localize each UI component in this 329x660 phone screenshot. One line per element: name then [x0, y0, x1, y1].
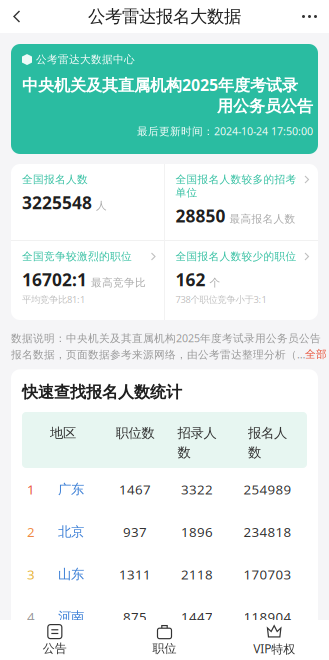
staticText: 1896 [181, 523, 213, 541]
staticText: 广东 [58, 481, 84, 497]
staticText: 738个职位竞争小于3:1 [175, 293, 266, 305]
staticText: 2118 [181, 565, 213, 583]
staticText: 16702:1 [22, 268, 87, 291]
staticText: 数据说明：中央机关及其直属机构2025年度考试录用公务员公告 [11, 331, 321, 345]
staticText: 数 [248, 444, 261, 461]
button[interactable]: 全国报名人数 [11, 164, 164, 240]
staticText: 人 [96, 199, 107, 212]
staticText: 最高竞争比 [91, 276, 146, 289]
staticText: 报名人 [248, 425, 287, 441]
staticText: 公考雷达报名大数据 [88, 6, 241, 27]
button[interactable]: 全国报名人数较少的职位 [164, 241, 318, 320]
staticText: 河南 [58, 608, 84, 625]
staticText: 234818 [243, 523, 291, 541]
staticText: 职位数 [115, 425, 154, 441]
staticText: 875 [123, 608, 147, 626]
button[interactable]: 公告 [0, 620, 110, 660]
button[interactable]: 更多 [290, 0, 329, 33]
staticText: 1467 [119, 480, 151, 498]
staticText: 2 [27, 523, 35, 541]
staticText: 1447 [181, 608, 213, 626]
staticText: 最高报名人数 [229, 212, 295, 225]
staticText: 254989 [243, 480, 291, 498]
button[interactable]: 全国竞争较激烈的职位 [11, 241, 164, 320]
staticText: 中央机关及其直属机构2025年度考试录 [22, 74, 298, 95]
staticText: 全国竞争较激烈的职位 [22, 250, 132, 263]
staticText: 170703 [243, 565, 291, 583]
staticText: 全国报名人数较少的职位 [175, 250, 296, 263]
staticText: 3225548 [22, 191, 92, 214]
staticText: 快速查找报名人数统计 [22, 382, 182, 402]
staticText: 公考雷达大数据中心 [36, 53, 135, 66]
staticText: 3 [27, 565, 35, 583]
staticText: 最后更新时间：2024-10-24 17:50:00 [137, 124, 313, 138]
button[interactable]: 职位 [110, 620, 219, 660]
staticText: 4 [27, 608, 35, 626]
staticText: 1311 [119, 565, 151, 583]
staticText: 3322 [181, 480, 213, 498]
button[interactable]: VIP特权 [219, 620, 329, 660]
staticText: 公告 [43, 641, 67, 656]
button[interactable]: 2 [22, 510, 307, 553]
staticText: 北京 [58, 523, 84, 540]
staticText: 162 [175, 268, 205, 291]
staticText: 用公务员公告 [217, 96, 313, 116]
staticText: 个 [209, 276, 220, 289]
staticText: 全部 [305, 348, 327, 361]
button[interactable]: 1 [22, 468, 307, 510]
staticText: 数 [177, 444, 190, 461]
staticText: VIP特权 [253, 640, 295, 656]
button[interactable]: 4 [22, 595, 307, 638]
staticText: 28850 [175, 204, 225, 227]
staticText: 地区 [50, 425, 76, 441]
staticText: 1 [27, 480, 35, 498]
button[interactable]: 全国报名人数较多的招考单位 [164, 164, 318, 240]
staticText: 招录人 [177, 425, 216, 441]
staticText: 937 [123, 523, 147, 541]
button[interactable]: 返回 [0, 0, 34, 33]
button[interactable]: 3 [22, 553, 307, 595]
staticText: 职位 [152, 641, 176, 656]
staticText: 平均竞争比81:1 [22, 293, 85, 305]
staticText: 118904 [243, 608, 291, 626]
staticText: 全国报名人数 [22, 173, 88, 186]
staticText: 全国报名人数较多的招考单位 [175, 173, 296, 199]
staticText: 报名数据，页面数据参考来源网络，由公考雷达整理分析（… [11, 347, 305, 361]
staticText: 山东 [58, 566, 84, 582]
